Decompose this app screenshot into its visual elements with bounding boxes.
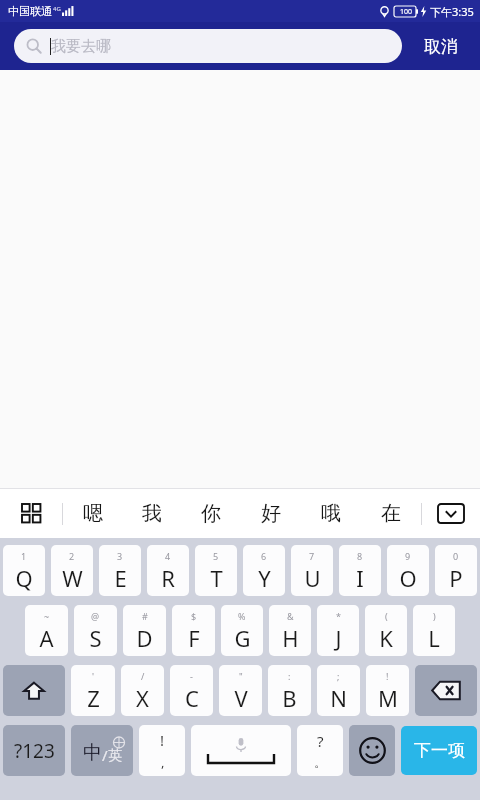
- staticText: N: [330, 683, 347, 713]
- button[interactable]: ): [413, 605, 455, 656]
- button[interactable]: 0: [435, 545, 477, 596]
- staticText: O: [399, 563, 417, 593]
- staticText: 我: [142, 501, 162, 526]
- staticText: U: [304, 563, 321, 593]
- button[interactable]: $: [172, 605, 215, 656]
- staticText: 0: [453, 550, 459, 562]
- button[interactable]: *: [317, 605, 359, 656]
- staticText: G: [234, 623, 251, 653]
- button[interactable]: 我要去哪: [14, 29, 402, 63]
- button[interactable]: 哦: [301, 489, 361, 538]
- button[interactable]: %: [221, 605, 263, 656]
- staticText: R: [161, 563, 175, 593]
- staticText: H: [282, 623, 299, 653]
- button[interactable]: 我: [122, 489, 181, 538]
- button[interactable]: ': [71, 665, 115, 716]
- staticText: 你: [201, 501, 221, 526]
- staticText: 嗯: [83, 501, 103, 526]
- staticText: &: [287, 610, 294, 622]
- button[interactable]: Space: [191, 725, 291, 776]
- button[interactable]: /: [121, 665, 164, 716]
- staticText: 4: [165, 550, 171, 562]
- staticText: ;: [337, 670, 340, 682]
- button[interactable]: 6: [243, 545, 285, 596]
- staticText: 5: [213, 550, 219, 562]
- staticText: L: [428, 623, 440, 653]
- button[interactable]: 取消: [402, 22, 480, 70]
- staticText: 下午3:35: [430, 4, 474, 19]
- staticText: (: [385, 610, 388, 622]
- button[interactable]: 5: [195, 545, 237, 596]
- staticText: 中: [83, 741, 102, 765]
- button[interactable]: &: [269, 605, 311, 656]
- staticText: 英: [108, 747, 122, 765]
- staticText: ): [433, 610, 436, 622]
- staticText: -: [190, 670, 193, 682]
- staticText: 3: [117, 550, 123, 562]
- staticText: A: [39, 623, 54, 653]
- staticText: J: [335, 623, 342, 653]
- button[interactable]: ~: [25, 605, 68, 656]
- staticText: ?123: [14, 738, 55, 764]
- button[interactable]: 9: [387, 545, 429, 596]
- staticText: W: [62, 563, 83, 593]
- button[interactable]: (: [365, 605, 407, 656]
- button[interactable]: !: [366, 665, 409, 716]
- staticText: E: [114, 563, 127, 593]
- staticText: 4G: [53, 5, 61, 13]
- button[interactable]: 1: [3, 545, 45, 596]
- button[interactable]: Backspace: [415, 665, 477, 716]
- button[interactable]: 你: [181, 489, 241, 538]
- staticText: 取消: [424, 36, 458, 57]
- button[interactable]: 好: [241, 489, 301, 538]
- staticText: @: [91, 610, 100, 622]
- staticText: V: [234, 683, 248, 713]
- button[interactable]: 2: [51, 545, 93, 596]
- button[interactable]: ": [219, 665, 262, 716]
- staticText: 下一项: [414, 740, 465, 761]
- staticText: C: [185, 683, 199, 713]
- staticText: 9: [405, 550, 411, 562]
- staticText: S: [89, 623, 102, 653]
- staticText: ~: [44, 610, 50, 622]
- staticText: I: [356, 563, 364, 593]
- button[interactable]: Keyboard layouts: [0, 489, 62, 538]
- button[interactable]: ?123: [3, 725, 65, 776]
- button[interactable]: #: [123, 605, 166, 656]
- button[interactable]: 嗯: [63, 489, 122, 538]
- button[interactable]: Emoji: [349, 725, 395, 776]
- button[interactable]: 7: [291, 545, 333, 596]
- staticText: 在: [381, 501, 401, 526]
- staticText: /: [102, 745, 108, 765]
- button[interactable]: 8: [339, 545, 381, 596]
- button[interactable]: @: [74, 605, 117, 656]
- button[interactable]: ?: [297, 725, 343, 776]
- staticText: P: [449, 563, 463, 593]
- button[interactable]: 3: [99, 545, 141, 596]
- staticText: K: [379, 623, 393, 653]
- button[interactable]: 下一项: [401, 726, 477, 775]
- staticText: B: [282, 683, 297, 713]
- button[interactable]: -: [170, 665, 213, 716]
- button[interactable]: 4: [147, 545, 189, 596]
- staticText: 好: [261, 501, 281, 526]
- staticText: ,: [161, 753, 165, 771]
- button[interactable]: ;: [317, 665, 360, 716]
- staticText: 8: [357, 550, 363, 562]
- staticText: ?: [317, 731, 324, 751]
- button[interactable]: Hide candidates: [422, 489, 480, 538]
- staticText: *: [336, 610, 341, 622]
- staticText: 2: [69, 550, 75, 562]
- staticText: ': [92, 670, 95, 682]
- staticText: #: [142, 610, 148, 622]
- staticText: $: [191, 610, 197, 622]
- staticText: !: [386, 670, 389, 682]
- button[interactable]: Switch language: [71, 725, 133, 776]
- staticText: T: [210, 563, 223, 593]
- staticText: X: [136, 683, 149, 713]
- button[interactable]: !: [139, 725, 185, 776]
- button[interactable]: 在: [361, 489, 421, 538]
- button[interactable]: Shift: [3, 665, 65, 716]
- staticText: :: [288, 670, 291, 682]
- button[interactable]: :: [268, 665, 311, 716]
